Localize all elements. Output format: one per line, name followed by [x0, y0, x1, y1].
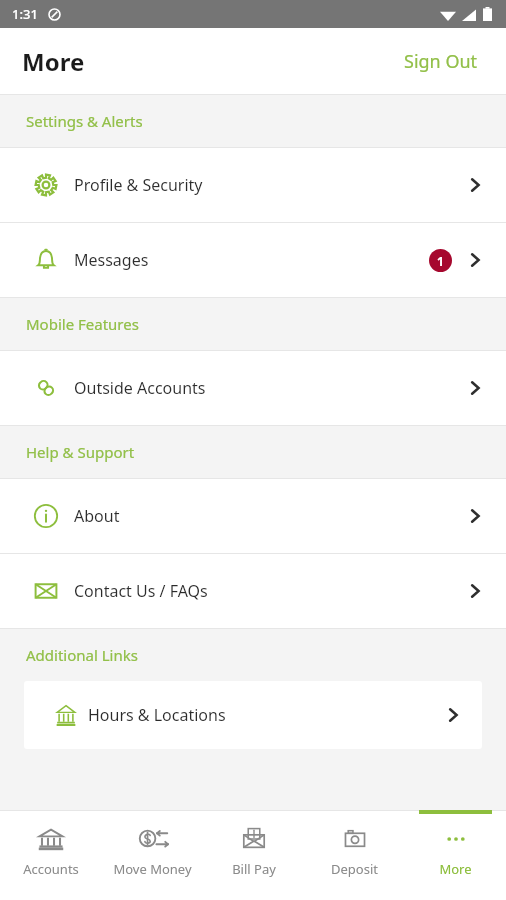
staticText: About — [74, 505, 120, 527]
staticText: Accounts — [23, 860, 79, 878]
staticText: Sign Out — [404, 49, 478, 74]
button[interactable]: Messages — [0, 223, 506, 297]
staticText: More — [22, 45, 85, 78]
button[interactable]: More — [405, 810, 506, 900]
staticText: Contact Us / FAQs — [74, 580, 208, 602]
staticText: Outside Accounts — [74, 377, 206, 399]
button[interactable]: Bill Pay — [203, 810, 304, 900]
staticText: Messages — [74, 249, 149, 271]
button[interactable]: About — [0, 479, 506, 553]
button[interactable]: Deposit — [304, 810, 405, 900]
staticText: Deposit — [331, 860, 378, 878]
button[interactable]: Sign Out — [398, 43, 484, 80]
button[interactable]: Hours & Locations — [24, 681, 482, 749]
button[interactable]: Profile & Security — [0, 148, 506, 222]
staticText: Mobile Features — [26, 314, 139, 334]
staticText: Hours & Locations — [88, 704, 226, 726]
staticText: Profile & Security — [74, 174, 203, 196]
button[interactable]: Outside Accounts — [0, 351, 506, 425]
staticText: Help & Support — [26, 442, 135, 462]
staticText: Move Money — [113, 860, 192, 878]
staticText: 1:31 — [12, 5, 38, 23]
staticText: Bill Pay — [232, 860, 276, 878]
button[interactable]: Accounts — [0, 810, 102, 900]
button[interactable]: Contact Us / FAQs — [0, 554, 506, 628]
button[interactable]: Move Money — [102, 810, 203, 900]
staticText: Settings & Alerts — [26, 111, 143, 131]
staticText: 1 — [437, 253, 444, 269]
staticText: More — [439, 860, 472, 878]
staticText: Additional Links — [26, 645, 138, 665]
